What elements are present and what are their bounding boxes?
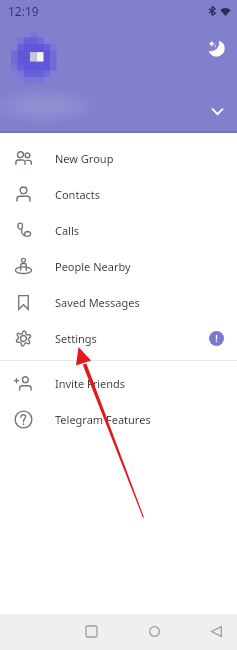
button[interactable]: Telegram Features: [0, 401, 237, 437]
button[interactable]: Settings: [0, 320, 237, 356]
staticText: Telegram Features: [55, 412, 151, 427]
button[interactable]: New Group: [0, 140, 237, 176]
button[interactable]: People Nearby: [0, 248, 237, 284]
button[interactable]: Home: [141, 618, 167, 644]
button[interactable]: Calls: [0, 212, 237, 248]
button[interactable]: Recent apps: [78, 618, 104, 644]
button[interactable]: Contacts: [0, 176, 237, 212]
button[interactable]: Expand accounts: [204, 98, 230, 124]
staticText: Invite Friends: [55, 376, 126, 391]
button[interactable]: Saved Messages: [0, 284, 237, 320]
staticText: New Group: [55, 151, 114, 166]
staticText: Calls: [55, 223, 80, 238]
button[interactable]: Night mode: [203, 35, 229, 61]
button[interactable]: Invite Friends: [0, 365, 237, 401]
button[interactable]: Back: [203, 618, 229, 644]
staticText: 12:19: [8, 3, 39, 19]
staticText: Settings: [55, 331, 97, 346]
staticText: Contacts: [55, 187, 101, 202]
staticText: People Nearby: [55, 259, 131, 274]
staticText: Saved Messages: [55, 295, 140, 310]
